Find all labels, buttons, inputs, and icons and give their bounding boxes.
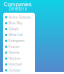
staticText: Evergreen [9,39,25,43]
button[interactable]: Delta Ltd [3,32,35,38]
staticText: Ironclad [9,62,22,66]
staticText: Directory [8,6,26,11]
staticText: Cobalt [9,27,19,31]
staticText: Delta Ltd [9,33,23,37]
staticText: Juniper [9,68,21,72]
button[interactable]: Acme Corporation [3,14,35,20]
button[interactable]: Cobalt [3,26,35,32]
staticText: Horizon [9,57,21,60]
button[interactable]: Evergreen [3,38,35,44]
button[interactable]: Blue Sky [3,20,35,26]
staticText: Granite [9,51,20,55]
staticText: Acme Corporation [9,15,34,19]
button[interactable]: Fusion [3,44,35,50]
staticText: Blue Sky [9,21,23,25]
button[interactable]: Granite [3,50,35,56]
staticText: Fusion [9,45,20,49]
button[interactable]: Horizon [3,56,35,61]
button[interactable]: Juniper [3,67,35,73]
button[interactable]: Ironclad [3,61,35,67]
staticText: Companies [3,1,31,8]
